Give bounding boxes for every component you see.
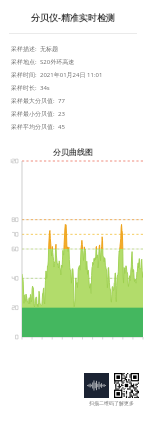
staticText: 34s: [40, 84, 50, 92]
staticText: 分贝仪-精准实时检测: [31, 11, 115, 23]
staticText: 23: [58, 110, 65, 118]
staticText: 45: [58, 123, 65, 131]
staticText: 采样描述:: [11, 45, 37, 53]
staticText: 采样最小分贝值:: [11, 110, 55, 118]
staticText: 采样平均分贝值:: [11, 123, 55, 131]
staticText: S20外环高速: [40, 58, 75, 66]
staticText: 无标题: [40, 45, 58, 53]
staticText: 77: [58, 97, 65, 105]
staticText: 采样最大分贝值:: [11, 97, 55, 105]
staticText: 采样时长:: [11, 84, 37, 92]
staticText: 采样时间:: [11, 71, 37, 79]
staticText: 2021年01月24日 11:01: [40, 71, 103, 79]
button[interactable]: QR code, scan for more: [114, 373, 139, 398]
staticText: 扫描二维码了解更多: [89, 400, 134, 406]
staticText: 分贝曲线图: [53, 147, 93, 157]
staticText: 采样地点:: [11, 58, 37, 66]
button[interactable]: Decibel meter app icon: [84, 373, 109, 398]
